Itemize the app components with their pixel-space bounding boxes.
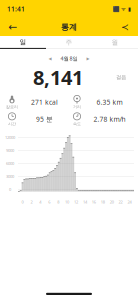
staticText: 0 (9, 187, 11, 192)
staticText: 8,141 (33, 64, 83, 91)
staticText: 4 (39, 199, 41, 204)
staticText: 2 (30, 199, 32, 204)
staticText: 6 (48, 199, 50, 204)
button[interactable]: 일 (0, 36, 46, 49)
staticText: 10 (65, 199, 69, 204)
staticText: 거리 (73, 104, 81, 109)
staticText: 6.35 km (96, 98, 122, 106)
staticText: 월 (111, 38, 118, 46)
staticText: 271 kcal (31, 98, 58, 106)
staticText: 6000 (6, 161, 14, 166)
staticText: 일 (19, 38, 26, 46)
staticText: 4월 8일 (60, 55, 77, 62)
staticText: 9000 (6, 148, 14, 153)
staticText: 2.78 km/h (93, 115, 125, 123)
staticText: 11:41 (7, 5, 25, 13)
button[interactable]: 주 (46, 36, 92, 49)
staticText: 속도 (73, 121, 81, 126)
staticText: 12000 (5, 135, 15, 140)
staticText: 18 (101, 199, 105, 204)
staticText: ▶ (86, 56, 89, 61)
staticText: ⬛ ᯤ ▮ (113, 5, 131, 13)
staticText: 통계 (61, 22, 77, 32)
staticText: 주 (65, 38, 72, 46)
staticText: 20 (110, 199, 114, 204)
staticText: 3000 (6, 174, 14, 179)
staticText: 0 (21, 199, 23, 204)
staticText: 24 (127, 199, 131, 204)
staticText: 12 (74, 199, 78, 204)
button[interactable]: Previous day (45, 54, 54, 63)
staticText: 16 (92, 199, 96, 204)
staticText: ← (8, 21, 17, 33)
staticText: 칼로리 (6, 104, 18, 109)
staticText: 22 (119, 199, 123, 204)
staticText: 시간 (8, 121, 16, 126)
staticText: ≺ (121, 22, 129, 32)
button[interactable]: Back (3, 18, 23, 36)
staticText: ◀ (48, 56, 51, 61)
button[interactable]: 월 (92, 36, 138, 49)
staticText: 95 분 (36, 115, 53, 123)
staticText: 걸음 (116, 74, 126, 81)
button[interactable]: Next day (83, 54, 92, 63)
staticText: 8 (57, 199, 59, 204)
button[interactable]: Share (115, 18, 135, 36)
staticText: 14 (83, 199, 87, 204)
